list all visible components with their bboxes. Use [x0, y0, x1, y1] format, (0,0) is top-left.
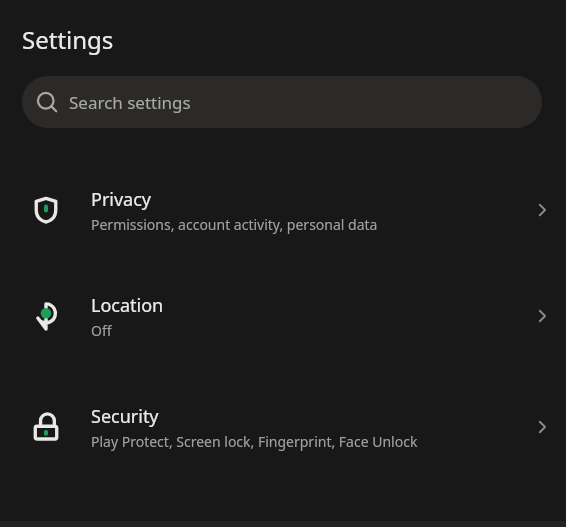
staticText: Security: [91, 404, 159, 429]
staticText: Play Protect, Screen lock, Fingerprint, …: [91, 432, 418, 451]
button[interactable]: Privacy: [0, 157, 566, 263]
button[interactable]: Security: [0, 369, 566, 485]
staticText: Permissions, account activity, personal …: [91, 215, 378, 234]
button[interactable]: Location: [0, 263, 566, 369]
button[interactable]: Search settings: [22, 76, 542, 128]
other: Open Privacy: [518, 157, 566, 263]
staticText: Location: [91, 293, 164, 318]
staticText: Settings: [22, 23, 114, 56]
other: Open Location: [518, 263, 566, 369]
staticText: Off: [91, 321, 112, 340]
other: Open Security: [518, 369, 566, 485]
staticText: Search settings: [69, 91, 191, 114]
staticText: Privacy: [91, 187, 152, 212]
